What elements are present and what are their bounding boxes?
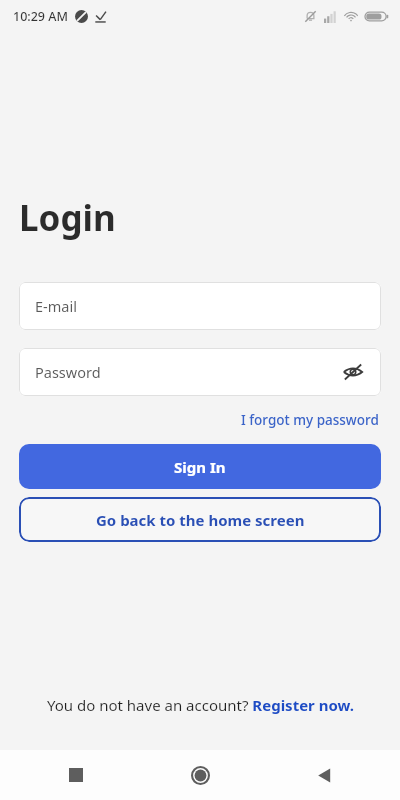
staticText: Password bbox=[35, 362, 101, 382]
staticText: 10:29 AM bbox=[13, 8, 68, 25]
staticText: Go back to the home screen bbox=[96, 510, 305, 530]
staticText: I forgot my password bbox=[241, 411, 379, 429]
button[interactable]: Show password bbox=[339, 358, 367, 386]
staticText: You do not have an account? Register now… bbox=[47, 695, 354, 715]
button[interactable]: Home bbox=[178, 753, 222, 797]
staticText: Sign In bbox=[174, 457, 226, 477]
button[interactable]: Back bbox=[302, 753, 346, 797]
button[interactable]: Recent apps bbox=[54, 753, 98, 797]
button[interactable]: You do not have an account? Register now… bbox=[0, 695, 400, 715]
button[interactable]: Sign In bbox=[19, 444, 381, 489]
button[interactable]: I forgot my password bbox=[239, 408, 381, 432]
staticText: E-mail bbox=[35, 296, 77, 316]
staticText: Login bbox=[19, 194, 116, 242]
button[interactable]: Password bbox=[19, 348, 381, 396]
button[interactable]: Go back to the home screen bbox=[19, 497, 381, 542]
button[interactable]: E-mail bbox=[19, 282, 381, 330]
